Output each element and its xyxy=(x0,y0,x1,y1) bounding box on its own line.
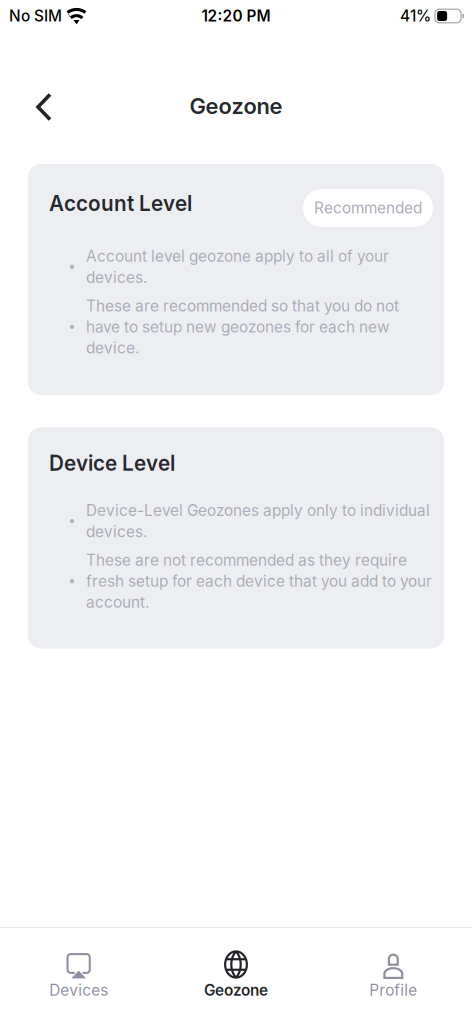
button[interactable]: Recommended xyxy=(303,189,433,227)
staticText: Device-Level Geozones apply only to indi… xyxy=(86,501,430,541)
staticText: These are not recommended as they requir… xyxy=(86,551,432,612)
button[interactable]: Back xyxy=(22,76,66,120)
button[interactable]: Devices xyxy=(0,928,157,1024)
staticText: 41% xyxy=(400,7,431,25)
staticText: Account Level xyxy=(49,191,192,216)
staticText: Geozone xyxy=(204,981,268,1000)
staticText: Recommended xyxy=(314,199,422,217)
button[interactable]: Geozone xyxy=(157,928,315,1024)
button[interactable]: Profile xyxy=(315,928,472,1024)
staticText: No SIM xyxy=(9,7,62,25)
staticText: Devices xyxy=(49,981,108,1000)
staticText: Account level geozone apply to all of yo… xyxy=(86,247,389,287)
staticText: Device Level xyxy=(49,451,175,476)
staticText: Geozone xyxy=(189,93,282,119)
staticText: 12:20 PM xyxy=(201,7,270,25)
staticText: Profile xyxy=(369,981,417,1000)
staticText: These are recommended so that you do not… xyxy=(86,297,399,357)
